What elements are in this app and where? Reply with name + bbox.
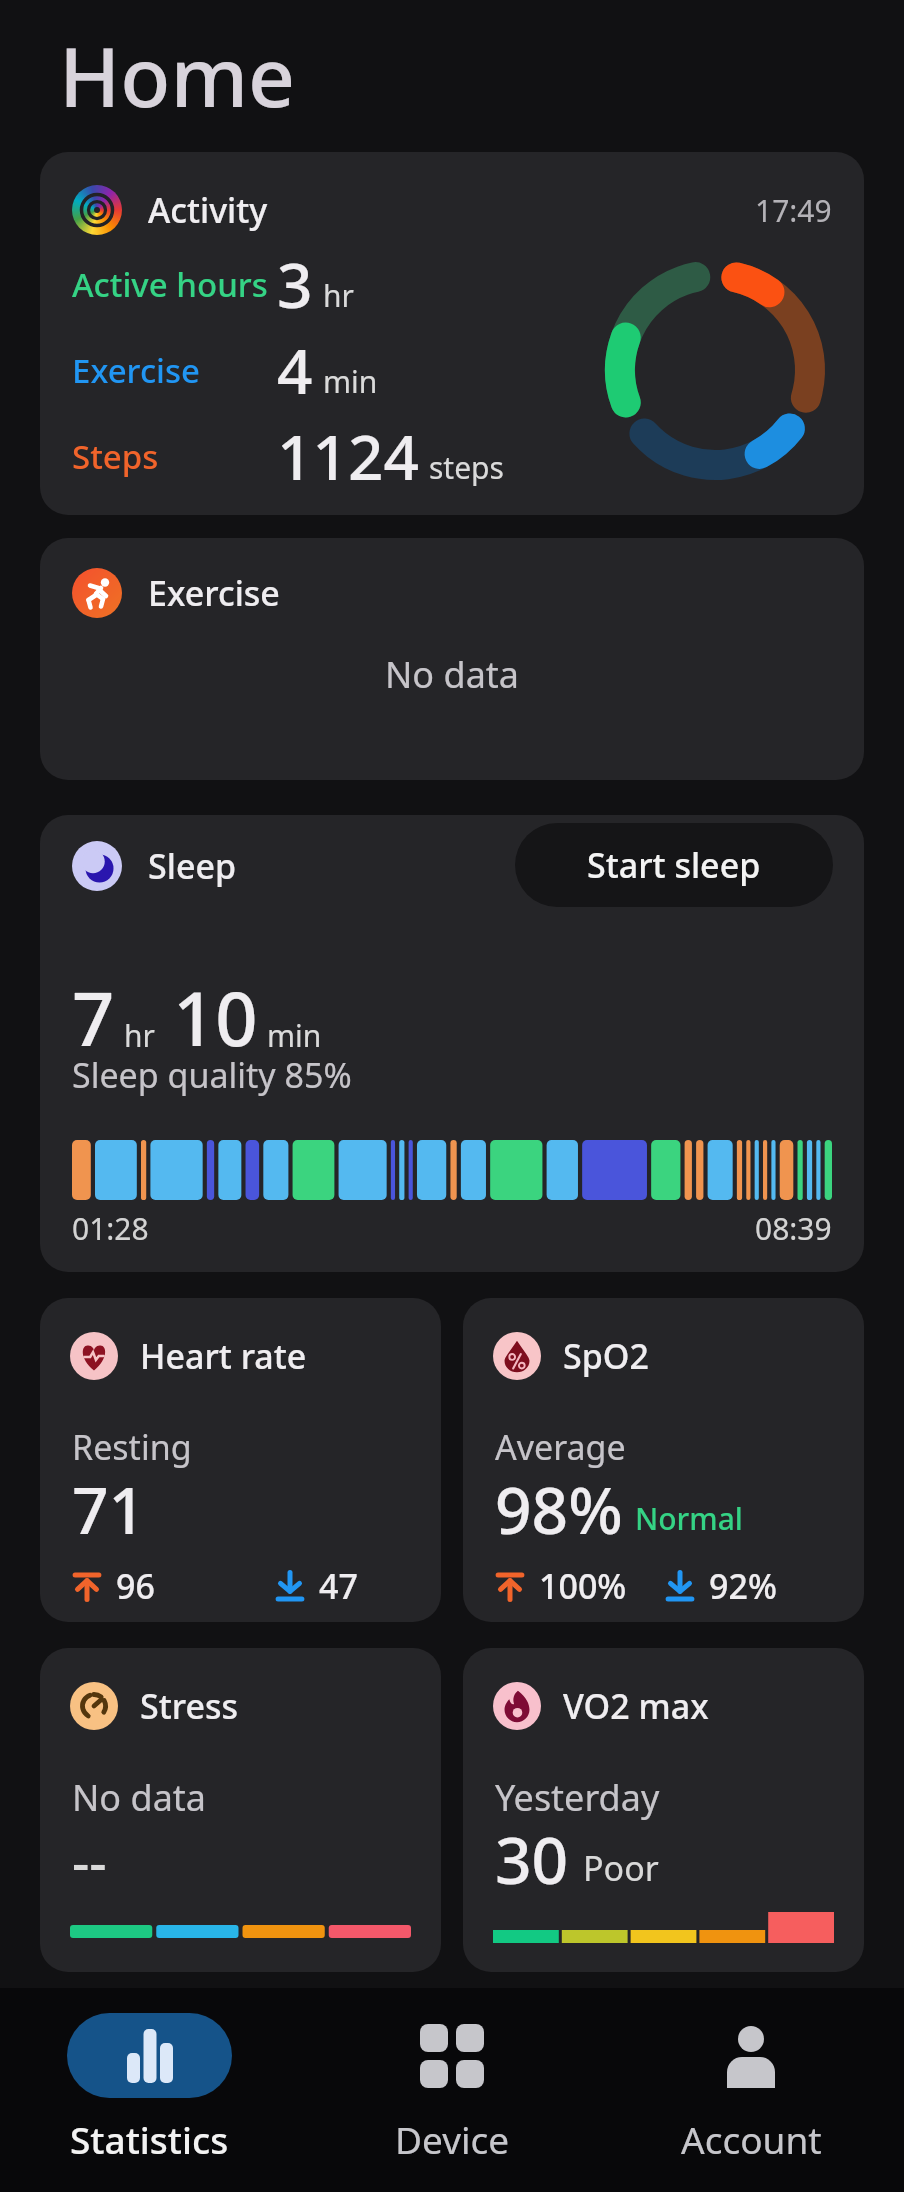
staticText: Stress <box>140 1683 238 1729</box>
staticText: 3 <box>277 242 313 326</box>
button[interactable]: Heart rate <box>40 1298 441 1622</box>
staticText: No data <box>385 650 520 699</box>
staticText: Activity <box>148 187 268 233</box>
staticText: 10 <box>173 967 258 1068</box>
staticText: Heart rate <box>140 1333 307 1379</box>
staticText: Start sleep <box>587 842 761 888</box>
staticText: 98% <box>495 1466 623 1553</box>
staticText: 71 <box>72 1466 146 1553</box>
staticText: Resting <box>72 1424 192 1470</box>
staticText: Steps <box>72 434 159 479</box>
button[interactable]: Start sleep <box>515 823 833 907</box>
button[interactable]: Stress <box>40 1648 441 1972</box>
staticText: Home <box>59 19 296 131</box>
button[interactable]: Exercise <box>40 538 864 780</box>
staticText: 4 <box>277 328 313 412</box>
staticText: Poor <box>583 1845 659 1891</box>
staticText: Device <box>395 2114 510 2164</box>
staticText: Average <box>495 1424 626 1470</box>
staticText: steps <box>429 447 504 488</box>
staticText: Yesterday <box>495 1773 660 1822</box>
staticText: VO2 max <box>563 1683 709 1729</box>
staticText: Active hours <box>72 262 268 307</box>
staticText: 08:39 <box>755 1208 832 1249</box>
staticText: Sleep <box>148 843 236 889</box>
staticText: Exercise <box>148 570 280 616</box>
staticText: 92% <box>709 1563 777 1609</box>
staticText: Account <box>681 2114 822 2164</box>
staticText: -- <box>72 1824 107 1898</box>
staticText: 96 <box>116 1563 155 1609</box>
staticText: Exercise <box>72 348 200 393</box>
staticText: 30 <box>495 1816 569 1903</box>
staticText: hr <box>323 275 354 316</box>
staticText: 7 <box>72 967 115 1068</box>
staticText: SpO2 <box>563 1333 649 1379</box>
button[interactable]: Activity <box>40 152 864 515</box>
button[interactable]: Device <box>387 2013 517 2164</box>
staticText: 17:49 <box>755 190 832 231</box>
button[interactable]: Sleep <box>40 815 864 1272</box>
staticText: 47 <box>319 1563 358 1609</box>
staticText: Normal <box>635 1498 743 1539</box>
staticText: 100% <box>539 1563 627 1609</box>
staticText: No data <box>72 1773 207 1822</box>
button[interactable]: Account <box>671 2013 831 2164</box>
staticText: 1124 <box>277 414 419 498</box>
staticText: min <box>267 1015 322 1056</box>
staticText: 01:28 <box>72 1208 149 1249</box>
staticText: Statistics <box>70 2114 229 2164</box>
button[interactable]: VO2 max <box>463 1648 864 1972</box>
button[interactable]: Statistics <box>67 2013 232 2164</box>
staticText: Sleep quality 85% <box>72 1052 352 1098</box>
staticText: min <box>323 361 378 402</box>
staticText: hr <box>124 1015 155 1056</box>
button[interactable]: SpO2 <box>463 1298 864 1622</box>
